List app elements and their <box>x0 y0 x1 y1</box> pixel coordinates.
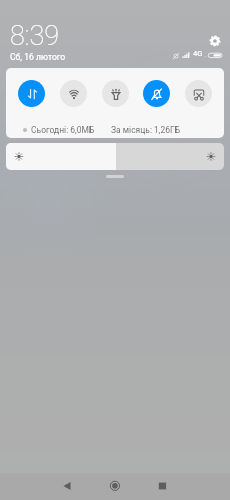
button[interactable]: Wi-Fi <box>60 80 87 107</box>
button[interactable]: Screenshot <box>185 80 212 107</box>
button[interactable]: Flashlight <box>102 80 129 107</box>
staticText: Сьогодні: 6,0МБ <box>31 125 95 135</box>
staticText: Сб, 16 лютого <box>10 52 66 62</box>
button[interactable]: Mobile data <box>18 80 45 107</box>
button[interactable]: Home <box>91 473 138 500</box>
button[interactable]: Back <box>42 473 89 500</box>
staticText: 4G <box>193 49 203 58</box>
staticText: За місяць: 1,26ГБ <box>111 125 181 135</box>
button[interactable]: Settings <box>209 35 221 47</box>
button[interactable]: Recent apps <box>139 473 186 500</box>
button[interactable]: Brightness <box>6 143 224 170</box>
staticText: 8:39 <box>10 20 60 52</box>
button[interactable]: Silent mode <box>143 80 170 107</box>
